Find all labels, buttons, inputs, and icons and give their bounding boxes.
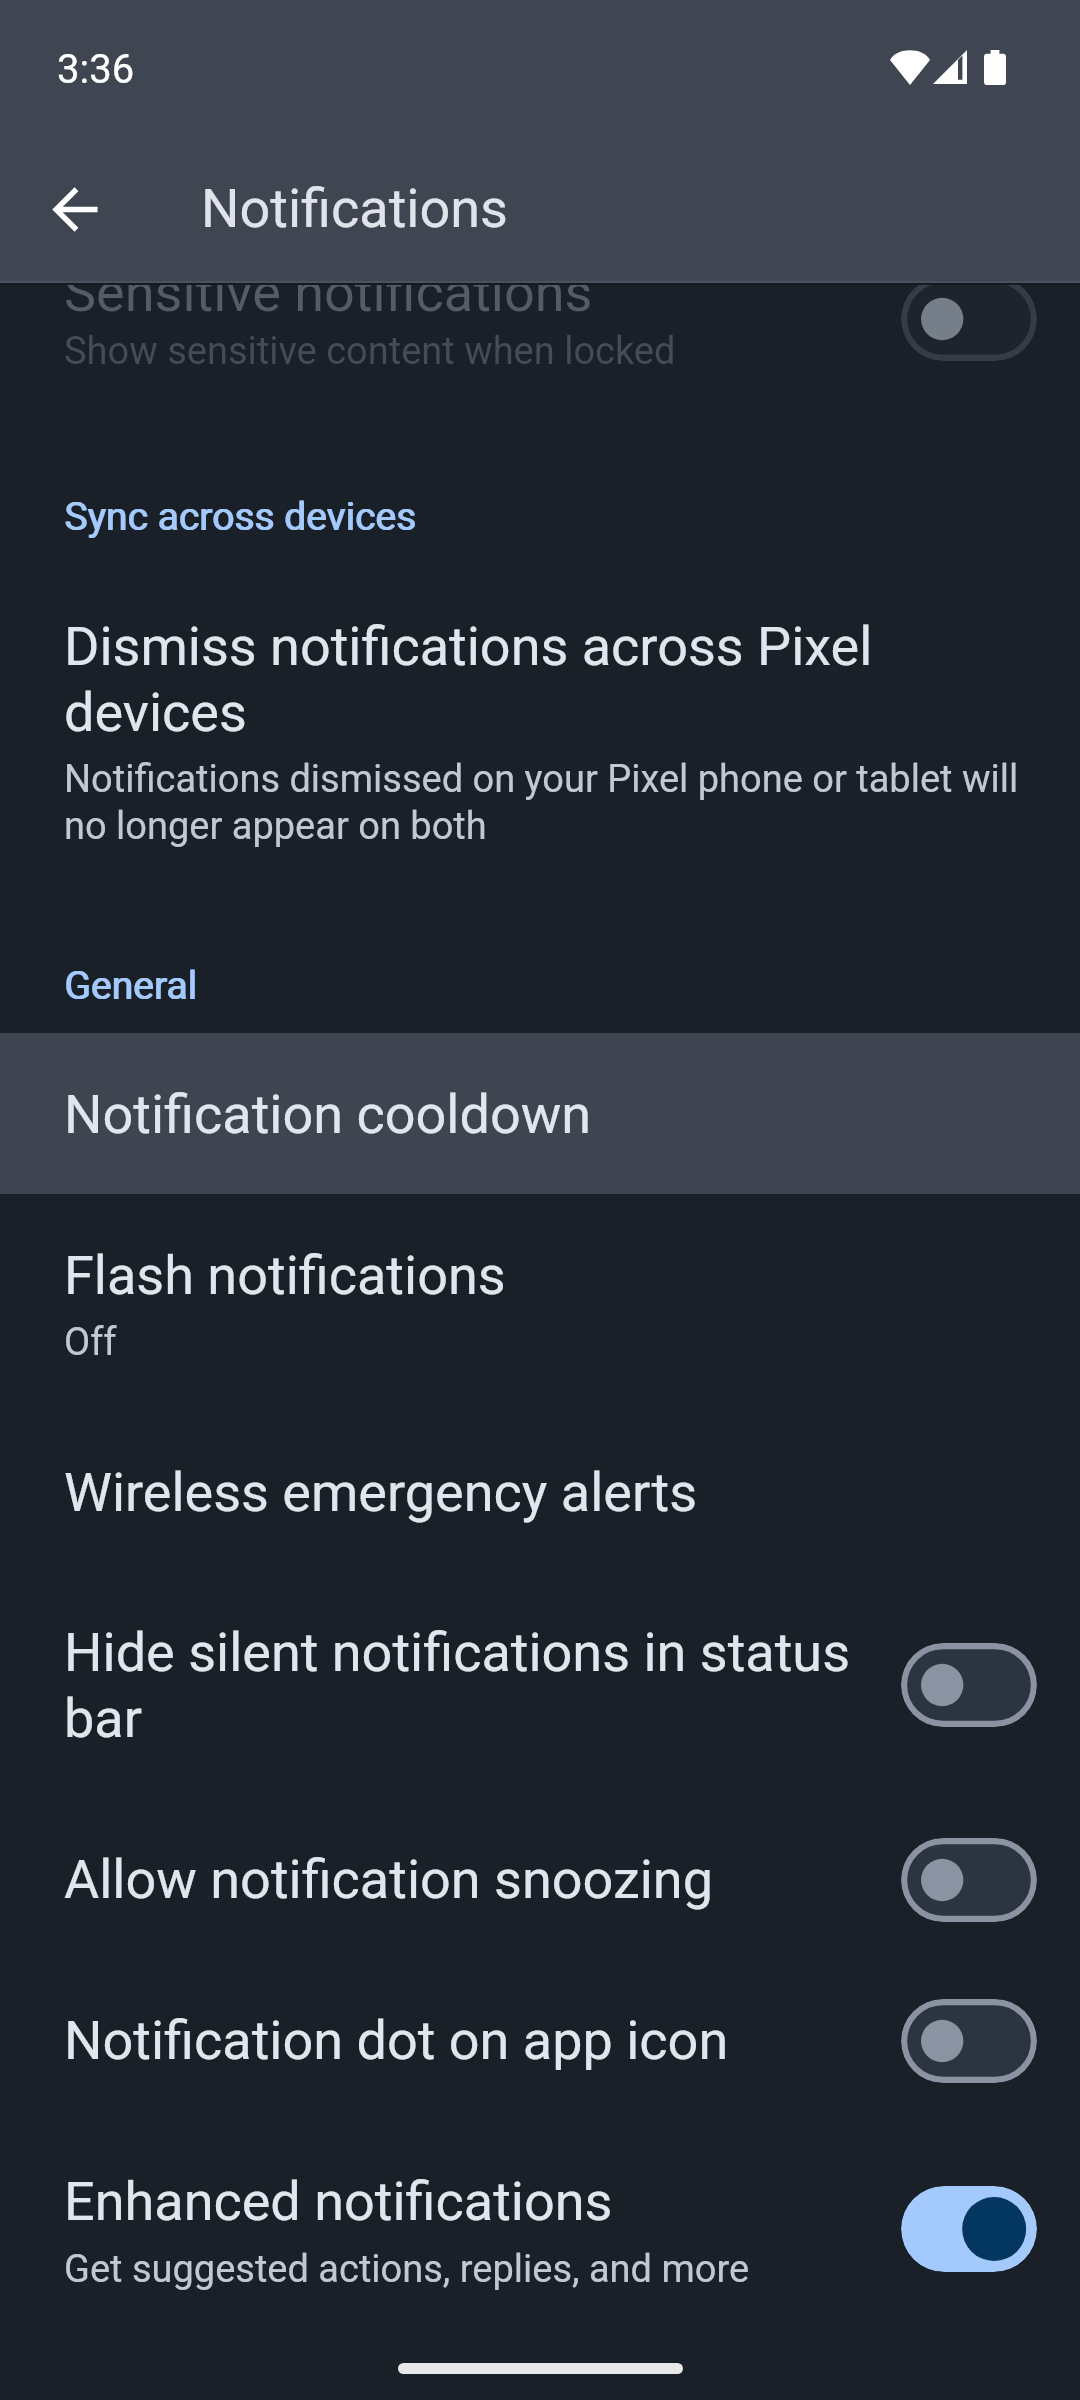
button[interactable]: Back — [1, 158, 152, 261]
staticText: Notification dot on app icon — [64, 2007, 729, 2073]
staticText: Flash notifications — [64, 1242, 506, 1308]
button[interactable]: Sensitive notifications — [0, 240, 1080, 400]
staticText: Notifications — [201, 177, 508, 240]
staticText: Enhanced notifications — [64, 2168, 613, 2234]
staticText: Hide silent notifications in status bar — [64, 1619, 864, 1751]
staticText: Off — [64, 1318, 117, 1365]
staticText: Get suggested actions, replies, and more — [64, 2245, 750, 2292]
staticText: General — [64, 963, 197, 1009]
button[interactable]: Toggle off — [901, 1838, 1037, 1922]
staticText: Notification cooldown — [64, 1081, 592, 1147]
staticText: Allow notification snoozing — [64, 1846, 713, 1912]
staticText: General — [65, 963, 198, 1009]
button[interactable]: Toggle off — [901, 1643, 1037, 1727]
button[interactable]: Toggle off — [901, 277, 1037, 361]
other: Wi-Fi — [890, 50, 930, 85]
button[interactable]: Hide silent notifications in status bar — [0, 1578, 1080, 1817]
staticText: Dismiss notifications across Pixel devic… — [64, 613, 944, 745]
button[interactable]: Dismiss notifications across Pixel devic… — [0, 613, 1080, 873]
staticText: Show sensitive content when locked — [64, 327, 676, 374]
button[interactable]: Toggle on — [901, 2186, 1037, 2272]
other: Mobile signal — [933, 50, 967, 84]
staticText: Sync across devices — [64, 494, 416, 540]
staticText: Sync across devices — [65, 494, 417, 540]
button[interactable]: Notification cooldown — [0, 1033, 1080, 1194]
staticText: 3:36 — [57, 46, 135, 93]
button[interactable]: Toggle off — [901, 1999, 1037, 2083]
button[interactable]: Allow notification snoozing — [0, 1799, 1080, 1978]
other: Battery — [984, 50, 1006, 85]
button[interactable]: Notification dot on app icon — [0, 1960, 1080, 2139]
button[interactable]: Flash notifications — [0, 1182, 1080, 1416]
staticText: Notifications dismissed on your Pixel ph… — [64, 755, 1019, 849]
button[interactable]: Wireless emergency alerts — [0, 1412, 1080, 1590]
staticText: Sensitive notifications — [64, 259, 593, 325]
button[interactable]: Enhanced notifications — [0, 2122, 1080, 2339]
staticText: Wireless emergency alerts — [64, 1459, 698, 1525]
